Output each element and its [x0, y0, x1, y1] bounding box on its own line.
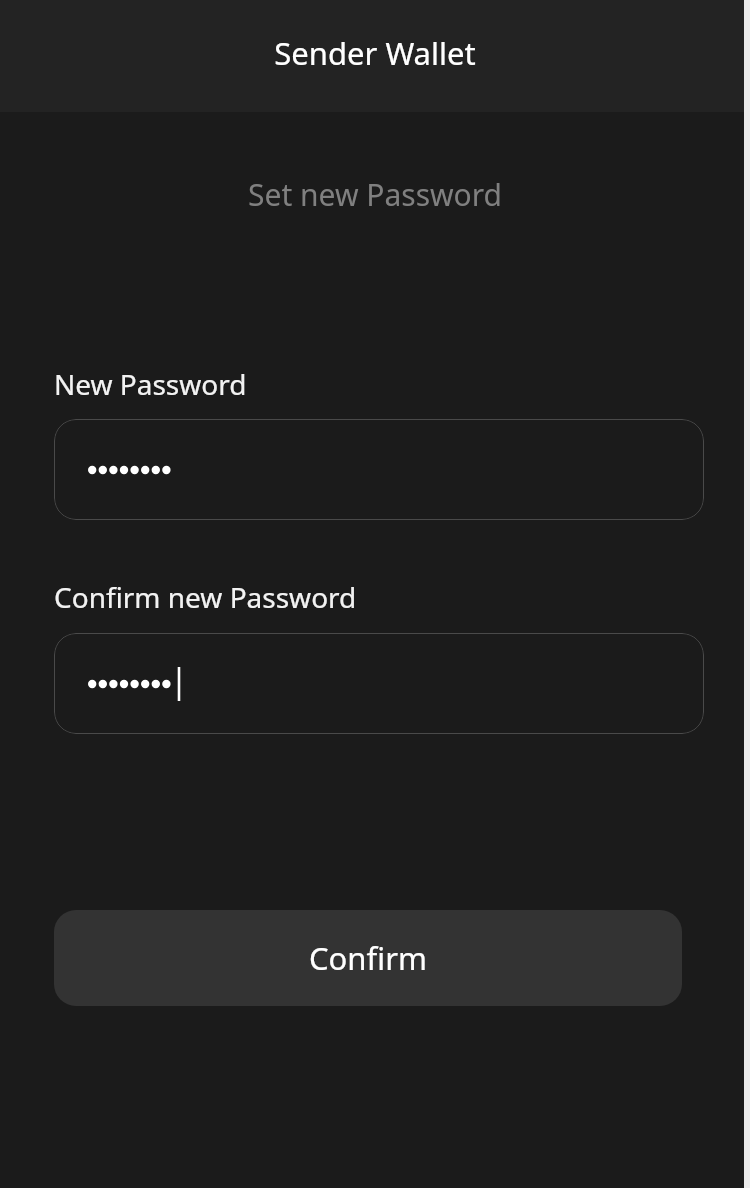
button[interactable]: Confirm: [54, 910, 682, 1006]
staticText: Confirm: [309, 937, 427, 979]
button[interactable]: [54, 419, 704, 520]
button[interactable]: [54, 633, 704, 734]
staticText: New Password: [54, 365, 247, 403]
staticText: Set new Password: [248, 174, 502, 215]
staticText: Sender Wallet: [274, 32, 476, 74]
staticText: Confirm new Password: [54, 578, 357, 616]
